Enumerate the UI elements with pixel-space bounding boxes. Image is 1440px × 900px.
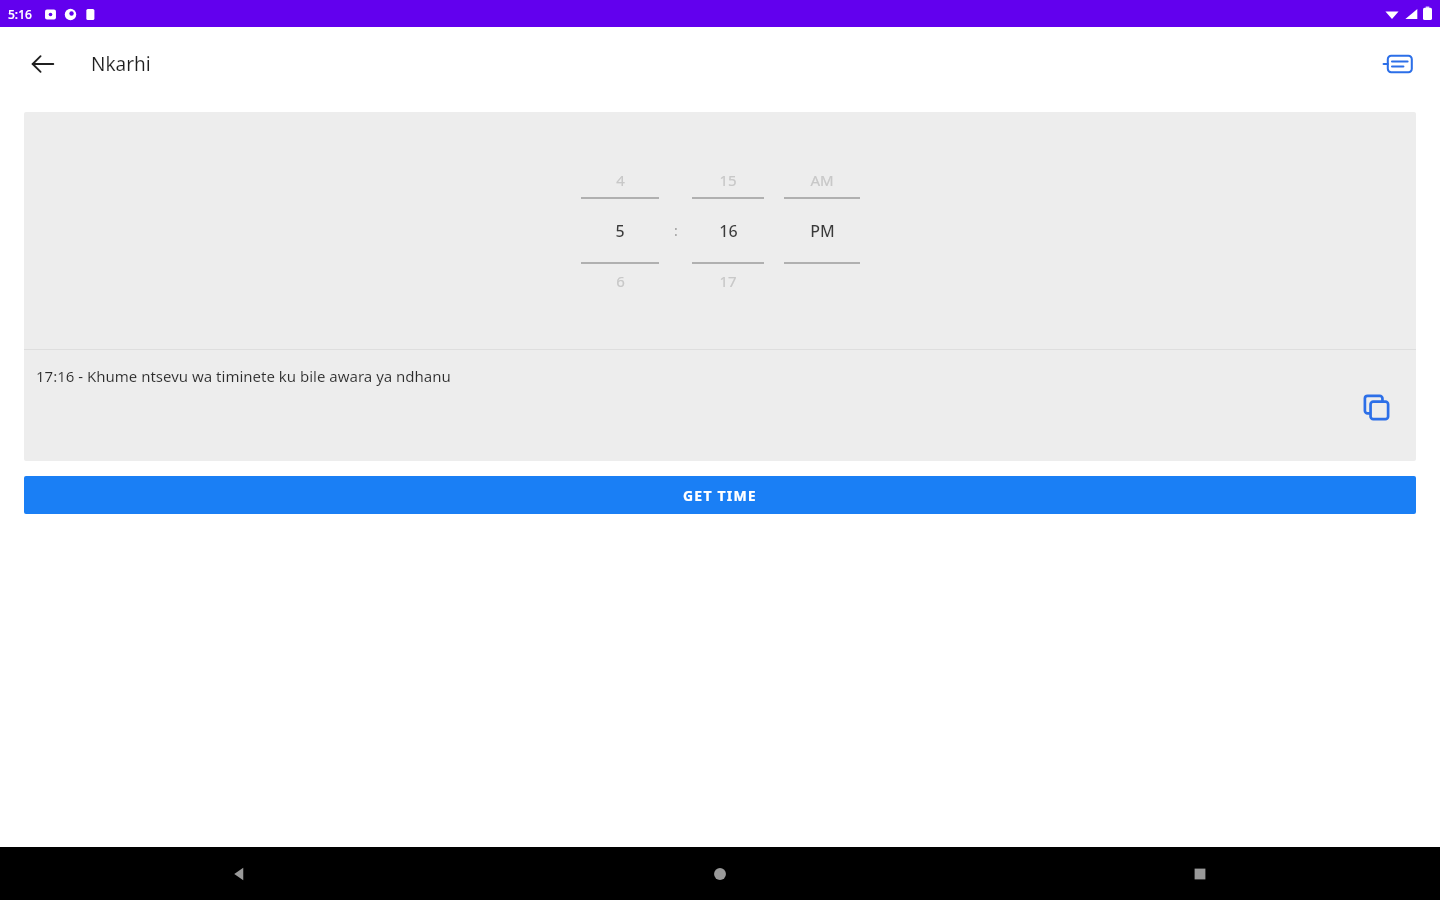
button[interactable]: Back — [0, 847, 480, 900]
staticText: 17:16 - Khume ntsevu wa timinete ku bile… — [36, 366, 451, 386]
button[interactable]: 15 — [692, 163, 764, 298]
staticText: 16 — [719, 220, 738, 242]
staticText: PM — [810, 220, 835, 242]
staticText: Nkarhi — [91, 51, 151, 77]
button[interactable]: 4 — [581, 163, 659, 298]
staticText: : — [674, 221, 678, 240]
button[interactable]: AM — [784, 163, 860, 298]
button[interactable]: View list — [1377, 43, 1419, 85]
button[interactable]: Recent apps — [960, 847, 1440, 900]
staticText: 17 — [719, 271, 737, 291]
button[interactable]: Home — [480, 847, 960, 900]
button[interactable]: Copy — [1356, 387, 1396, 427]
staticText: 5 — [615, 220, 625, 242]
staticText: 6 — [616, 271, 625, 291]
staticText: 4 — [616, 170, 625, 190]
button[interactable]: GET TIME — [24, 476, 1416, 514]
staticText: 15 — [719, 170, 737, 190]
staticText: 5:16 — [8, 6, 32, 22]
staticText: GET TIME — [683, 486, 757, 505]
staticText: AM — [810, 170, 834, 190]
button[interactable]: Back — [22, 43, 64, 85]
